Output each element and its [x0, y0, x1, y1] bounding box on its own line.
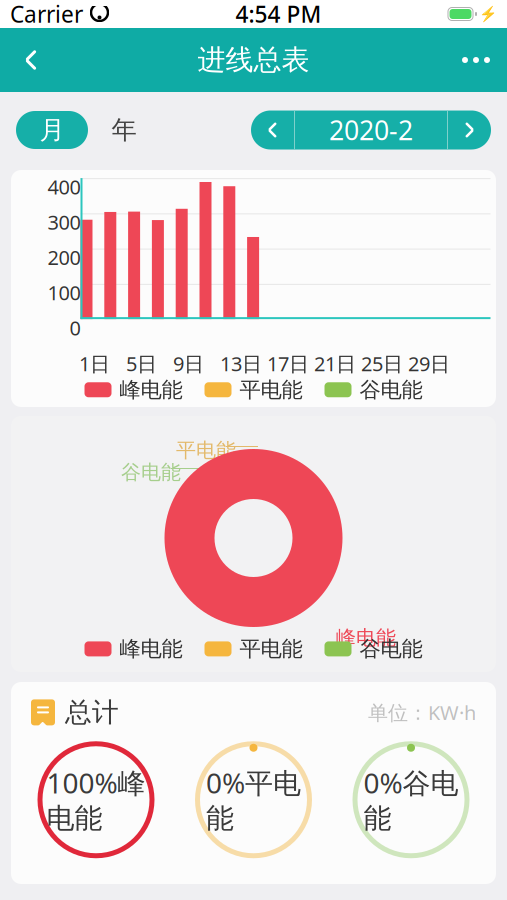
- staticText: 平电能: [239, 377, 302, 403]
- staticText: 1日: [79, 350, 110, 377]
- staticText: 峰电能: [119, 636, 182, 662]
- staticText: 0: [69, 314, 80, 341]
- staticText: 峰电能: [336, 625, 396, 650]
- staticText: 总计: [65, 696, 119, 729]
- staticText: 平电能: [239, 636, 302, 662]
- staticText: 400: [47, 173, 80, 200]
- staticText: 谷电能: [121, 460, 181, 485]
- staticText: 29日: [408, 350, 450, 377]
- staticText: 谷电能: [359, 636, 422, 662]
- staticText: 0%谷电能: [363, 764, 458, 836]
- staticText: 2020-2: [329, 112, 413, 148]
- staticText: 4:54 PM: [235, 0, 321, 29]
- button[interactable]: More options: [445, 29, 507, 91]
- staticText: 100: [47, 279, 80, 306]
- button[interactable]: Next month: [448, 110, 491, 149]
- button[interactable]: 2020-2: [295, 110, 447, 149]
- button[interactable]: Previous month: [251, 110, 294, 149]
- button[interactable]: Back: [0, 29, 62, 91]
- button[interactable]: 月: [16, 111, 88, 149]
- button[interactable]: 年: [88, 111, 160, 149]
- staticText: ⚡: [479, 6, 497, 22]
- staticText: 0%平电能: [206, 764, 301, 836]
- staticText: 25日: [361, 350, 403, 377]
- staticText: 100%峰电能: [46, 764, 145, 836]
- staticText: 单位：KW·h: [368, 699, 476, 726]
- staticText: 13日: [220, 350, 262, 377]
- staticText: 5日: [126, 350, 157, 377]
- staticText: 9日: [173, 350, 204, 377]
- staticText: 300: [47, 209, 80, 235]
- staticText: 21日: [314, 350, 356, 377]
- staticText: 月: [39, 114, 64, 145]
- staticText: 17日: [267, 350, 309, 377]
- staticText: 峰电能: [119, 377, 182, 403]
- staticText: 谷电能: [359, 377, 422, 403]
- staticText: 平电能: [176, 438, 236, 463]
- staticText: 200: [47, 244, 80, 270]
- staticText: 年: [111, 114, 136, 145]
- staticText: 进线总表: [197, 43, 309, 77]
- staticText: Carrier: [10, 0, 83, 29]
